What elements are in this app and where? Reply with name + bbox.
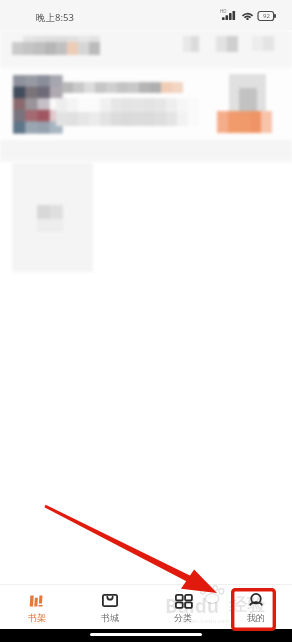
staticText: 92 (263, 12, 270, 20)
staticText: 书城 (101, 612, 119, 623)
staticText: Baidu (165, 593, 220, 619)
button[interactable]: 分类 (146, 584, 219, 629)
staticText: 晚上8:53 (36, 11, 74, 24)
button[interactable]: 我的 (219, 584, 292, 629)
button[interactable]: 书架 (0, 584, 73, 629)
staticText: 书架 (28, 612, 46, 623)
staticText: 分类 (174, 612, 192, 623)
staticText: 经验 (229, 594, 265, 617)
staticText: HD (220, 8, 227, 14)
button[interactable]: 书城 (73, 584, 146, 629)
staticText: jingyan.baidu.com (178, 617, 230, 625)
staticText: 我的 (247, 612, 265, 623)
